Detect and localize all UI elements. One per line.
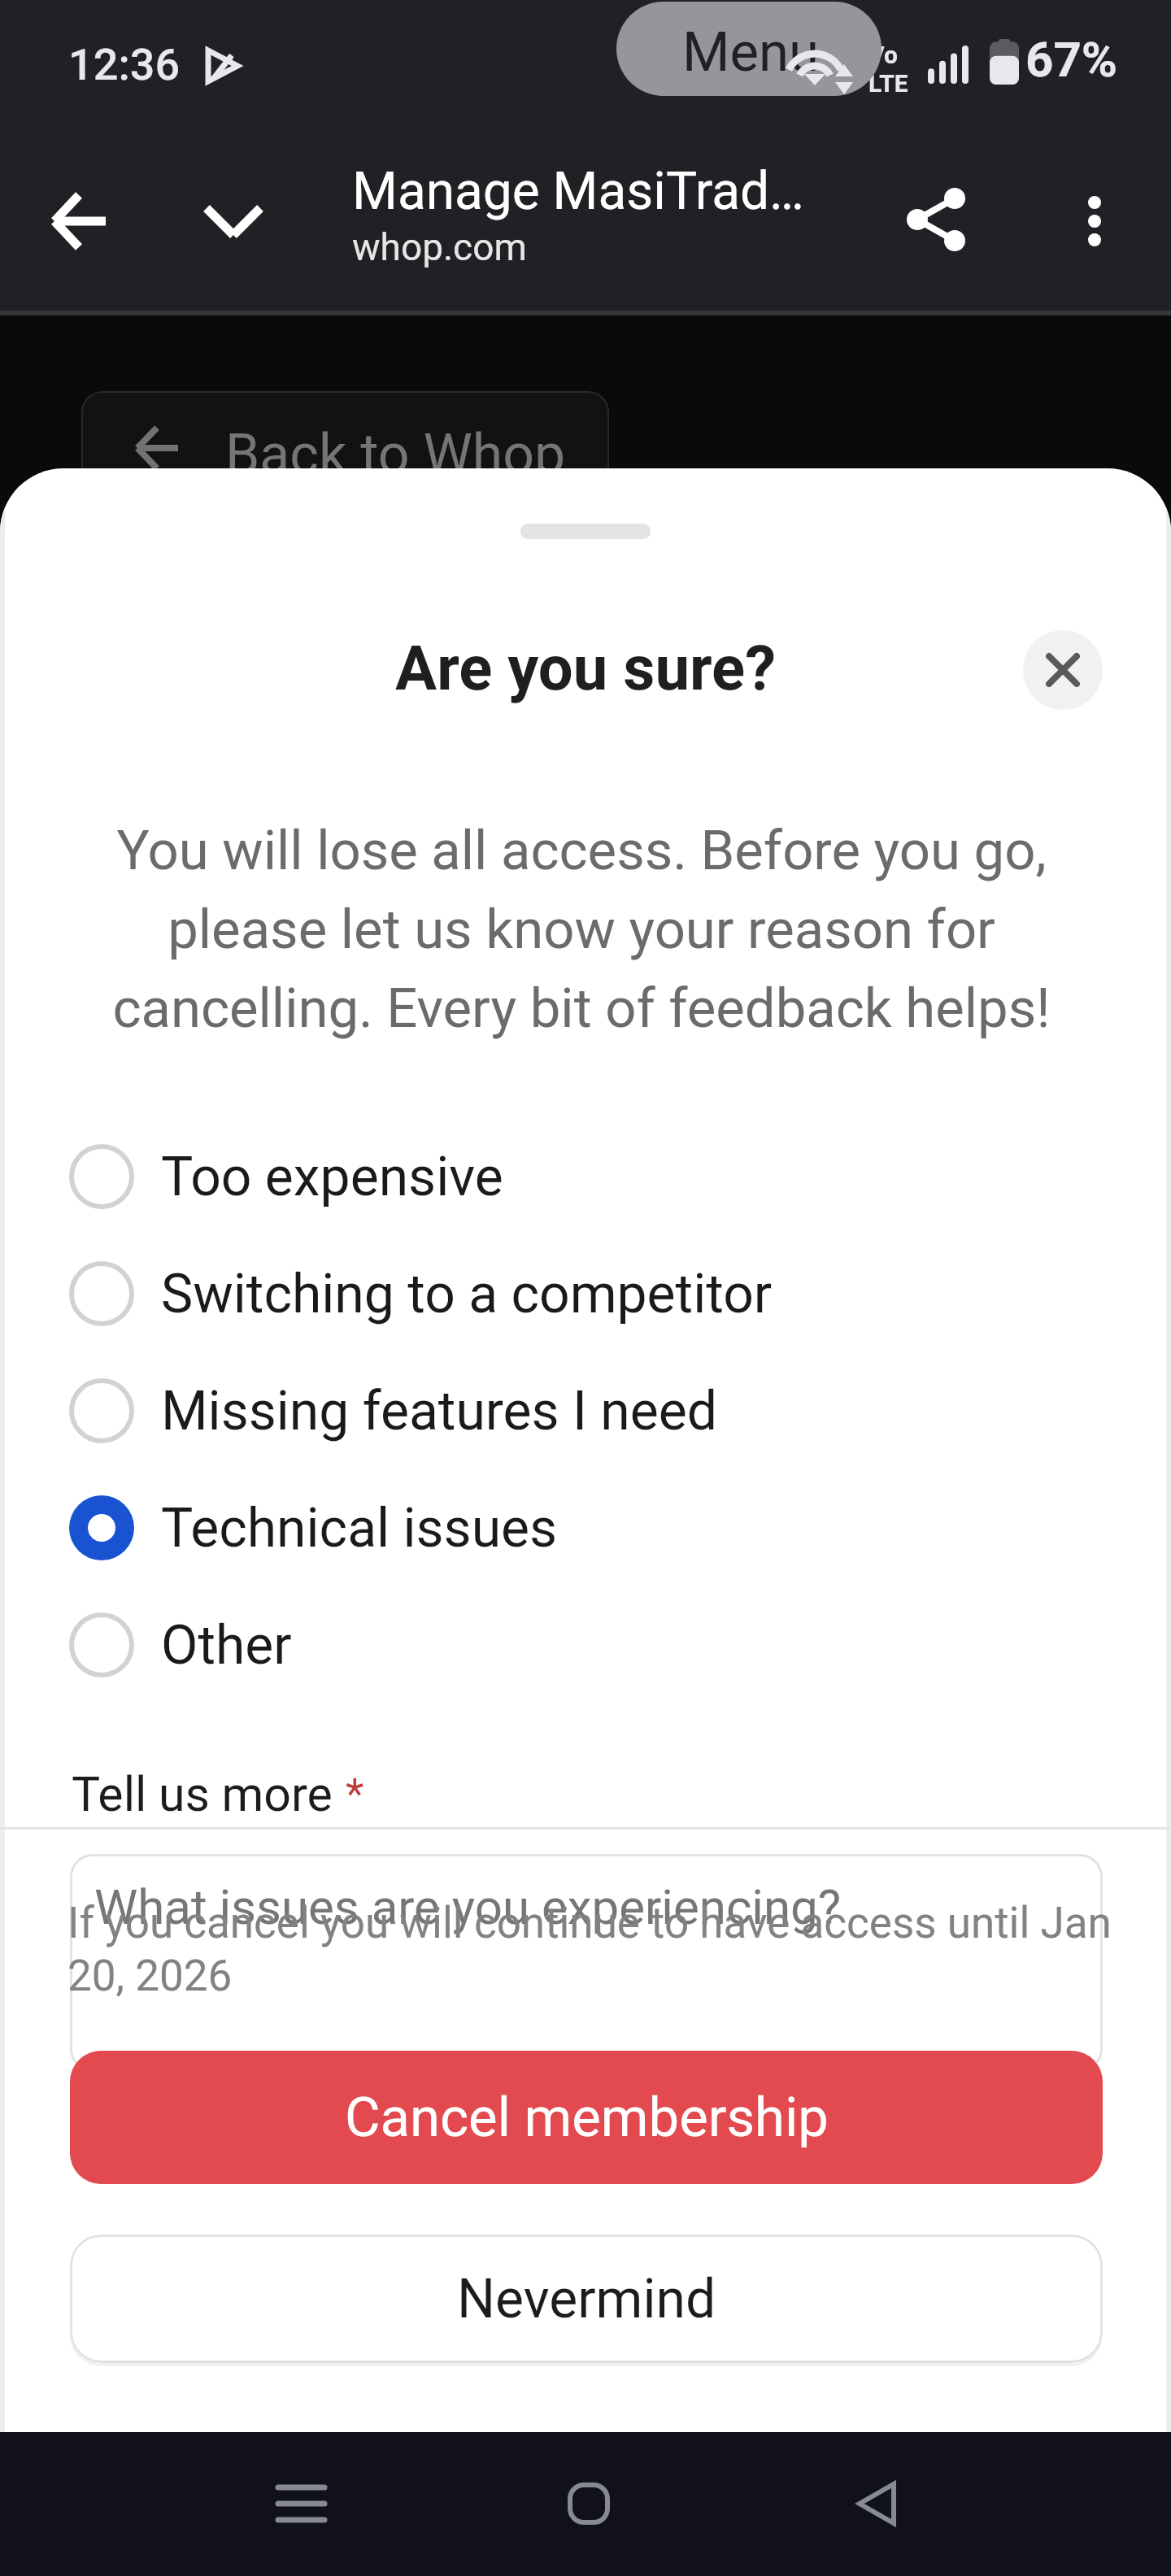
staticText: Are you sure?	[395, 632, 776, 704]
button[interactable]: Missing features I need	[0, 1352, 1171, 1469]
staticText: Manage MasiTrad…	[352, 161, 804, 222]
staticText: Technical issues	[161, 1497, 558, 1560]
button[interactable]: Expand website info	[172, 160, 294, 282]
staticText: Cancel membership	[345, 2086, 829, 2150]
staticText: *	[346, 1769, 364, 1819]
button[interactable]: Tell us more text field	[70, 1854, 1103, 2072]
staticText: If you cancel you will continue to have …	[67, 1898, 1125, 2001]
staticText: Switching to a competitor	[161, 1263, 773, 1325]
button[interactable]: Close	[1023, 630, 1103, 710]
button[interactable]: Recents	[244, 2447, 358, 2561]
button[interactable]: Back	[18, 160, 140, 282]
staticText: Vo	[868, 41, 898, 69]
staticText: Other	[161, 1614, 292, 1677]
button[interactable]: Share	[875, 159, 997, 281]
staticText: Menu	[682, 20, 819, 85]
staticText: Too expensive	[161, 1146, 503, 1208]
button[interactable]: Nevermind	[70, 2234, 1103, 2363]
staticText: whop.com	[352, 225, 527, 269]
button[interactable]: Cancel membership	[70, 2051, 1103, 2184]
staticText: 67%	[1025, 31, 1118, 88]
staticText: LTE	[868, 69, 908, 98]
staticText: Nevermind	[457, 2268, 716, 2330]
staticText: What issues are you experiencing?	[94, 1878, 842, 1935]
button[interactable]: Too expensive	[0, 1118, 1171, 1235]
staticText: 12:36	[68, 39, 181, 90]
staticText: Back to Whop	[225, 422, 566, 487]
button[interactable]: Back to Whop	[81, 391, 609, 511]
button[interactable]: Switching to a competitor	[0, 1235, 1171, 1352]
staticText: You will lose all access. Before you go,…	[110, 819, 1053, 1040]
button[interactable]: More options	[1034, 160, 1156, 282]
staticText: Missing features I need	[161, 1380, 717, 1442]
staticText: Tell us more	[72, 1766, 333, 1822]
button[interactable]: Technical issues	[0, 1469, 1171, 1586]
button[interactable]: Back	[820, 2447, 934, 2561]
button[interactable]: Home	[532, 2447, 646, 2561]
button[interactable]: Other	[0, 1586, 1171, 1704]
